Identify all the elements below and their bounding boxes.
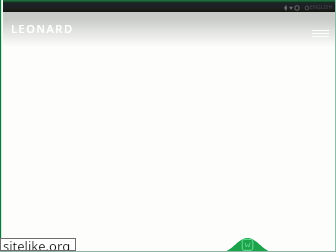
button[interactable]: Twitter [289,5,293,11]
button[interactable]: Menu [312,28,329,38]
button[interactable]: Language [305,5,309,11]
button[interactable]: Facebook [284,5,287,11]
staticText: sitelike.org [3,237,71,250]
button[interactable]: ENGLISH [310,4,333,11]
button[interactable]: Instagram [295,5,299,11]
button[interactable]: LEONARD [11,21,74,36]
